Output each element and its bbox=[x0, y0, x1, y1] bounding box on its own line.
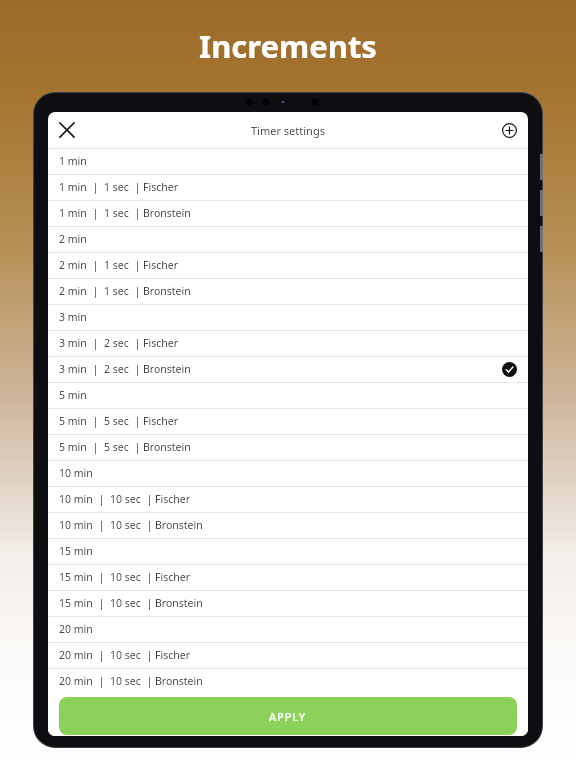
staticText: | bbox=[87, 258, 104, 272]
staticText: Bronstein bbox=[143, 362, 191, 376]
staticText: 20 min bbox=[59, 622, 93, 636]
staticText: 5 min bbox=[59, 414, 87, 428]
staticText: | bbox=[141, 674, 155, 688]
button[interactable]: 20 min bbox=[48, 642, 528, 668]
button[interactable]: 5 min bbox=[48, 382, 528, 408]
staticText: 10 sec bbox=[110, 570, 141, 584]
staticText: | bbox=[129, 362, 143, 376]
button[interactable]: 20 min bbox=[48, 668, 528, 694]
staticText: Bronstein bbox=[155, 518, 203, 532]
staticText: | bbox=[93, 596, 110, 610]
staticText: | bbox=[93, 648, 110, 662]
staticText: | bbox=[93, 518, 110, 532]
staticText: Fischer bbox=[143, 180, 178, 194]
button[interactable]: 15 min bbox=[48, 538, 528, 564]
staticText: 10 min bbox=[59, 466, 93, 480]
staticText: | bbox=[141, 596, 155, 610]
button[interactable]: 10 min bbox=[48, 460, 528, 486]
staticText: | bbox=[129, 258, 143, 272]
staticText: 1 sec bbox=[104, 180, 129, 194]
staticText: Fischer bbox=[143, 414, 178, 428]
staticText: 3 min bbox=[59, 362, 87, 376]
button[interactable]: 2 min bbox=[48, 278, 528, 304]
staticText: | bbox=[93, 492, 110, 506]
button[interactable]: 3 min bbox=[48, 330, 528, 356]
staticText: | bbox=[141, 518, 155, 532]
staticText: 10 min bbox=[59, 492, 93, 506]
staticText: 10 sec bbox=[110, 648, 141, 662]
staticText: 15 min bbox=[59, 570, 93, 584]
button[interactable]: APPLY bbox=[59, 697, 517, 735]
staticText: 2 sec bbox=[104, 362, 129, 376]
staticText: 5 sec bbox=[104, 414, 129, 428]
button[interactable]: Add preset bbox=[493, 114, 525, 146]
staticText: | bbox=[129, 440, 143, 454]
staticText: Bronstein bbox=[143, 440, 191, 454]
staticText: 5 sec bbox=[104, 440, 129, 454]
staticText: | bbox=[129, 180, 143, 194]
staticText: | bbox=[129, 336, 143, 350]
staticText: | bbox=[93, 674, 110, 688]
button[interactable]: 5 min bbox=[48, 408, 528, 434]
staticText: 10 sec bbox=[110, 596, 141, 610]
staticText: 1 min bbox=[59, 206, 87, 220]
staticText: Increments bbox=[199, 25, 377, 67]
button[interactable]: Close bbox=[51, 114, 83, 146]
button[interactable]: 1 min bbox=[48, 200, 528, 226]
button[interactable]: 15 min bbox=[48, 564, 528, 590]
staticText: | bbox=[87, 284, 104, 298]
staticText: 10 sec bbox=[110, 674, 141, 688]
staticText: 3 min bbox=[59, 310, 87, 324]
staticText: 10 sec bbox=[110, 492, 141, 506]
staticText: | bbox=[129, 284, 143, 298]
staticText: Fischer bbox=[143, 258, 178, 272]
staticText: 2 min bbox=[59, 232, 87, 246]
staticText: | bbox=[141, 492, 155, 506]
staticText: 5 min bbox=[59, 388, 87, 402]
staticText: 10 min bbox=[59, 518, 93, 532]
staticText: Fischer bbox=[155, 648, 190, 662]
button[interactable]: 20 min bbox=[48, 616, 528, 642]
staticText: 15 min bbox=[59, 596, 93, 610]
button[interactable]: 3 min bbox=[48, 304, 528, 330]
staticText: | bbox=[87, 414, 104, 428]
staticText: Bronstein bbox=[155, 596, 203, 610]
staticText: | bbox=[87, 362, 104, 376]
staticText: | bbox=[129, 414, 143, 428]
staticText: 2 min bbox=[59, 284, 87, 298]
button[interactable]: 10 min bbox=[48, 512, 528, 538]
staticText: | bbox=[93, 570, 110, 584]
staticText: 1 sec bbox=[104, 258, 129, 272]
button[interactable]: 5 min bbox=[48, 434, 528, 460]
staticText: Fischer bbox=[155, 492, 190, 506]
staticText: | bbox=[87, 180, 104, 194]
button[interactable]: 15 min bbox=[48, 590, 528, 616]
staticText: 3 min bbox=[59, 336, 87, 350]
staticText: Fischer bbox=[143, 336, 178, 350]
button[interactable]: 1 min bbox=[48, 148, 528, 174]
staticText: | bbox=[141, 570, 155, 584]
staticText: 2 sec bbox=[104, 336, 129, 350]
staticText: | bbox=[87, 206, 104, 220]
button[interactable]: 2 min bbox=[48, 226, 528, 252]
staticText: 20 min bbox=[59, 648, 93, 662]
staticText: | bbox=[141, 648, 155, 662]
button[interactable]: 3 min bbox=[48, 356, 528, 382]
staticText: | bbox=[129, 206, 143, 220]
staticText: | bbox=[87, 440, 104, 454]
staticText: 15 min bbox=[59, 544, 93, 558]
button[interactable]: 10 min bbox=[48, 486, 528, 512]
staticText: Bronstein bbox=[155, 674, 203, 688]
staticText: 2 min bbox=[59, 258, 87, 272]
staticText: 1 sec bbox=[104, 206, 129, 220]
staticText: 10 sec bbox=[110, 518, 141, 532]
staticText: 20 min bbox=[59, 674, 93, 688]
staticText: Fischer bbox=[155, 570, 190, 584]
staticText: 1 sec bbox=[104, 284, 129, 298]
staticText: Bronstein bbox=[143, 206, 191, 220]
staticText: APPLY bbox=[269, 709, 307, 724]
staticText: | bbox=[87, 336, 104, 350]
button[interactable]: 2 min bbox=[48, 252, 528, 278]
button[interactable]: 1 min bbox=[48, 174, 528, 200]
staticText: Bronstein bbox=[143, 284, 191, 298]
